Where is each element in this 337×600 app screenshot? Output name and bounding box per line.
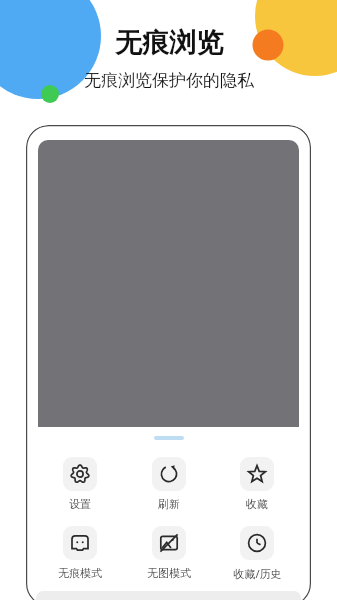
button[interactable]: Incognito mode [42,526,118,580]
staticText: 无痕浏览保护你的隐私 [84,70,254,91]
staticText: 收藏/历史 [233,566,282,581]
button[interactable]: No image mode [131,526,207,580]
staticText: 设置 [69,497,91,511]
button[interactable]: Refresh [131,457,207,511]
staticText: 无痕浏览 [115,26,223,60]
button[interactable]: Settings [42,457,118,511]
button[interactable]: Favorites and history [219,526,295,581]
staticText: 刷新 [158,497,180,511]
staticText: 无痕模式 [58,566,102,580]
staticText: 无图模式 [147,566,191,580]
staticText: 收藏 [246,497,268,511]
button[interactable]: Favorites [219,457,295,511]
